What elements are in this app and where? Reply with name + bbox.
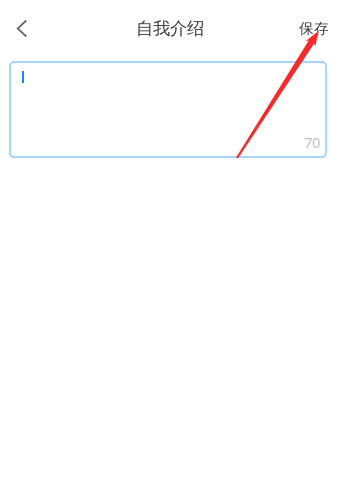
- staticText: 自我介绍: [136, 18, 204, 39]
- button[interactable]: Back: [0, 5, 44, 52]
- staticText: 保存: [299, 19, 329, 37]
- button[interactable]: Self introduction: [10, 62, 326, 157]
- button[interactable]: 保存: [299, 5, 340, 52]
- staticText: 70: [304, 132, 320, 152]
